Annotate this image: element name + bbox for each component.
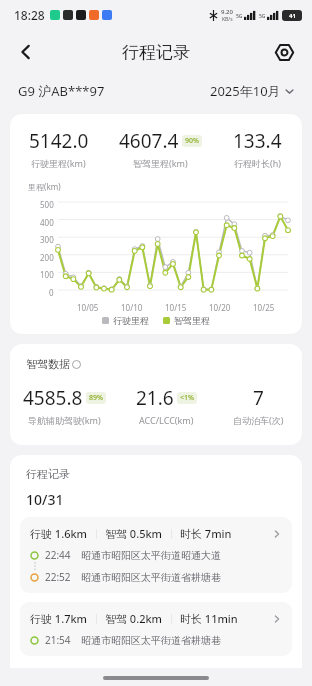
staticText: 昭通市昭阳区太平街道昭通大道 bbox=[81, 549, 221, 562]
staticText: 5G bbox=[236, 13, 243, 20]
staticText: 智驾数据 bbox=[26, 357, 70, 371]
button[interactable]: 行驶 1.6km bbox=[20, 517, 292, 593]
button[interactable]: 行驶 1.7km bbox=[20, 602, 292, 656]
staticText: 9.20 bbox=[221, 8, 233, 16]
staticText: 10/15 bbox=[165, 302, 187, 313]
staticText: 21.6 bbox=[136, 385, 174, 411]
staticText: 10/25 bbox=[253, 302, 275, 313]
staticText: 行驶里程 bbox=[113, 315, 149, 326]
staticText: 200 bbox=[40, 252, 54, 263]
staticText: 自动泊车(次) bbox=[233, 414, 284, 426]
staticText: 里程(km) bbox=[28, 181, 61, 192]
staticText: 21:54 bbox=[45, 633, 71, 647]
staticText: 300 bbox=[40, 234, 54, 245]
staticText: 导航辅助驾驶(km) bbox=[28, 414, 101, 426]
staticText: 4607.4 bbox=[119, 128, 179, 154]
staticText: KB/s bbox=[222, 16, 233, 23]
staticText: 400 bbox=[40, 217, 54, 228]
staticText: 7 bbox=[253, 385, 264, 411]
staticText: 18:28 bbox=[14, 7, 45, 23]
staticText: 时长 11min bbox=[180, 611, 238, 626]
staticText: 10/10 bbox=[121, 302, 143, 313]
staticText: 0 bbox=[49, 287, 54, 298]
staticText: 行驶 1.7km bbox=[30, 611, 88, 626]
staticText: 智驾 0.2km bbox=[105, 611, 163, 626]
staticText: G9 沪AB***97 bbox=[18, 82, 105, 100]
staticText: 行程时长(h) bbox=[234, 157, 281, 169]
staticText: 5142.0 bbox=[29, 128, 89, 154]
staticText: 行程记录 bbox=[122, 42, 190, 63]
staticText: 智驾 0.5km bbox=[105, 526, 163, 541]
staticText: 行驶 1.6km bbox=[30, 526, 88, 541]
staticText: 5G bbox=[259, 13, 266, 20]
staticText: 22:52 bbox=[45, 570, 71, 584]
staticText: 41 bbox=[289, 12, 296, 20]
staticText: ACC/LCC(km) bbox=[139, 414, 194, 426]
button[interactable]: Back bbox=[6, 32, 46, 72]
staticText: 89% bbox=[89, 393, 103, 403]
staticText: 100 bbox=[40, 269, 54, 280]
staticText: 昭通市昭阳区太平街道省耕塘巷 bbox=[81, 634, 221, 647]
staticText: 智驾里程 bbox=[174, 315, 210, 326]
staticText: 行驶里程(km) bbox=[31, 157, 86, 169]
staticText: 时长 7min bbox=[180, 526, 232, 541]
staticText: 22:44 bbox=[45, 548, 71, 562]
staticText: 智驾里程(km) bbox=[133, 157, 188, 169]
staticText: <1% bbox=[180, 393, 194, 403]
staticText: 10/31 bbox=[26, 490, 64, 509]
staticText: 90% bbox=[185, 136, 199, 146]
staticText: 行程记录 bbox=[26, 467, 70, 481]
staticText: 2025年10月 bbox=[210, 82, 281, 100]
staticText: 昭通市昭阳区太平街道省耕塘巷 bbox=[81, 571, 221, 584]
staticText: 10/05 bbox=[77, 302, 99, 313]
button[interactable]: Settings bbox=[264, 32, 304, 72]
staticText: 133.4 bbox=[233, 128, 282, 154]
button[interactable]: 2025年10月 bbox=[210, 82, 294, 100]
staticText: 10/20 bbox=[209, 302, 231, 313]
staticText: 4585.8 bbox=[23, 385, 83, 411]
staticText: 500 bbox=[40, 199, 54, 210]
